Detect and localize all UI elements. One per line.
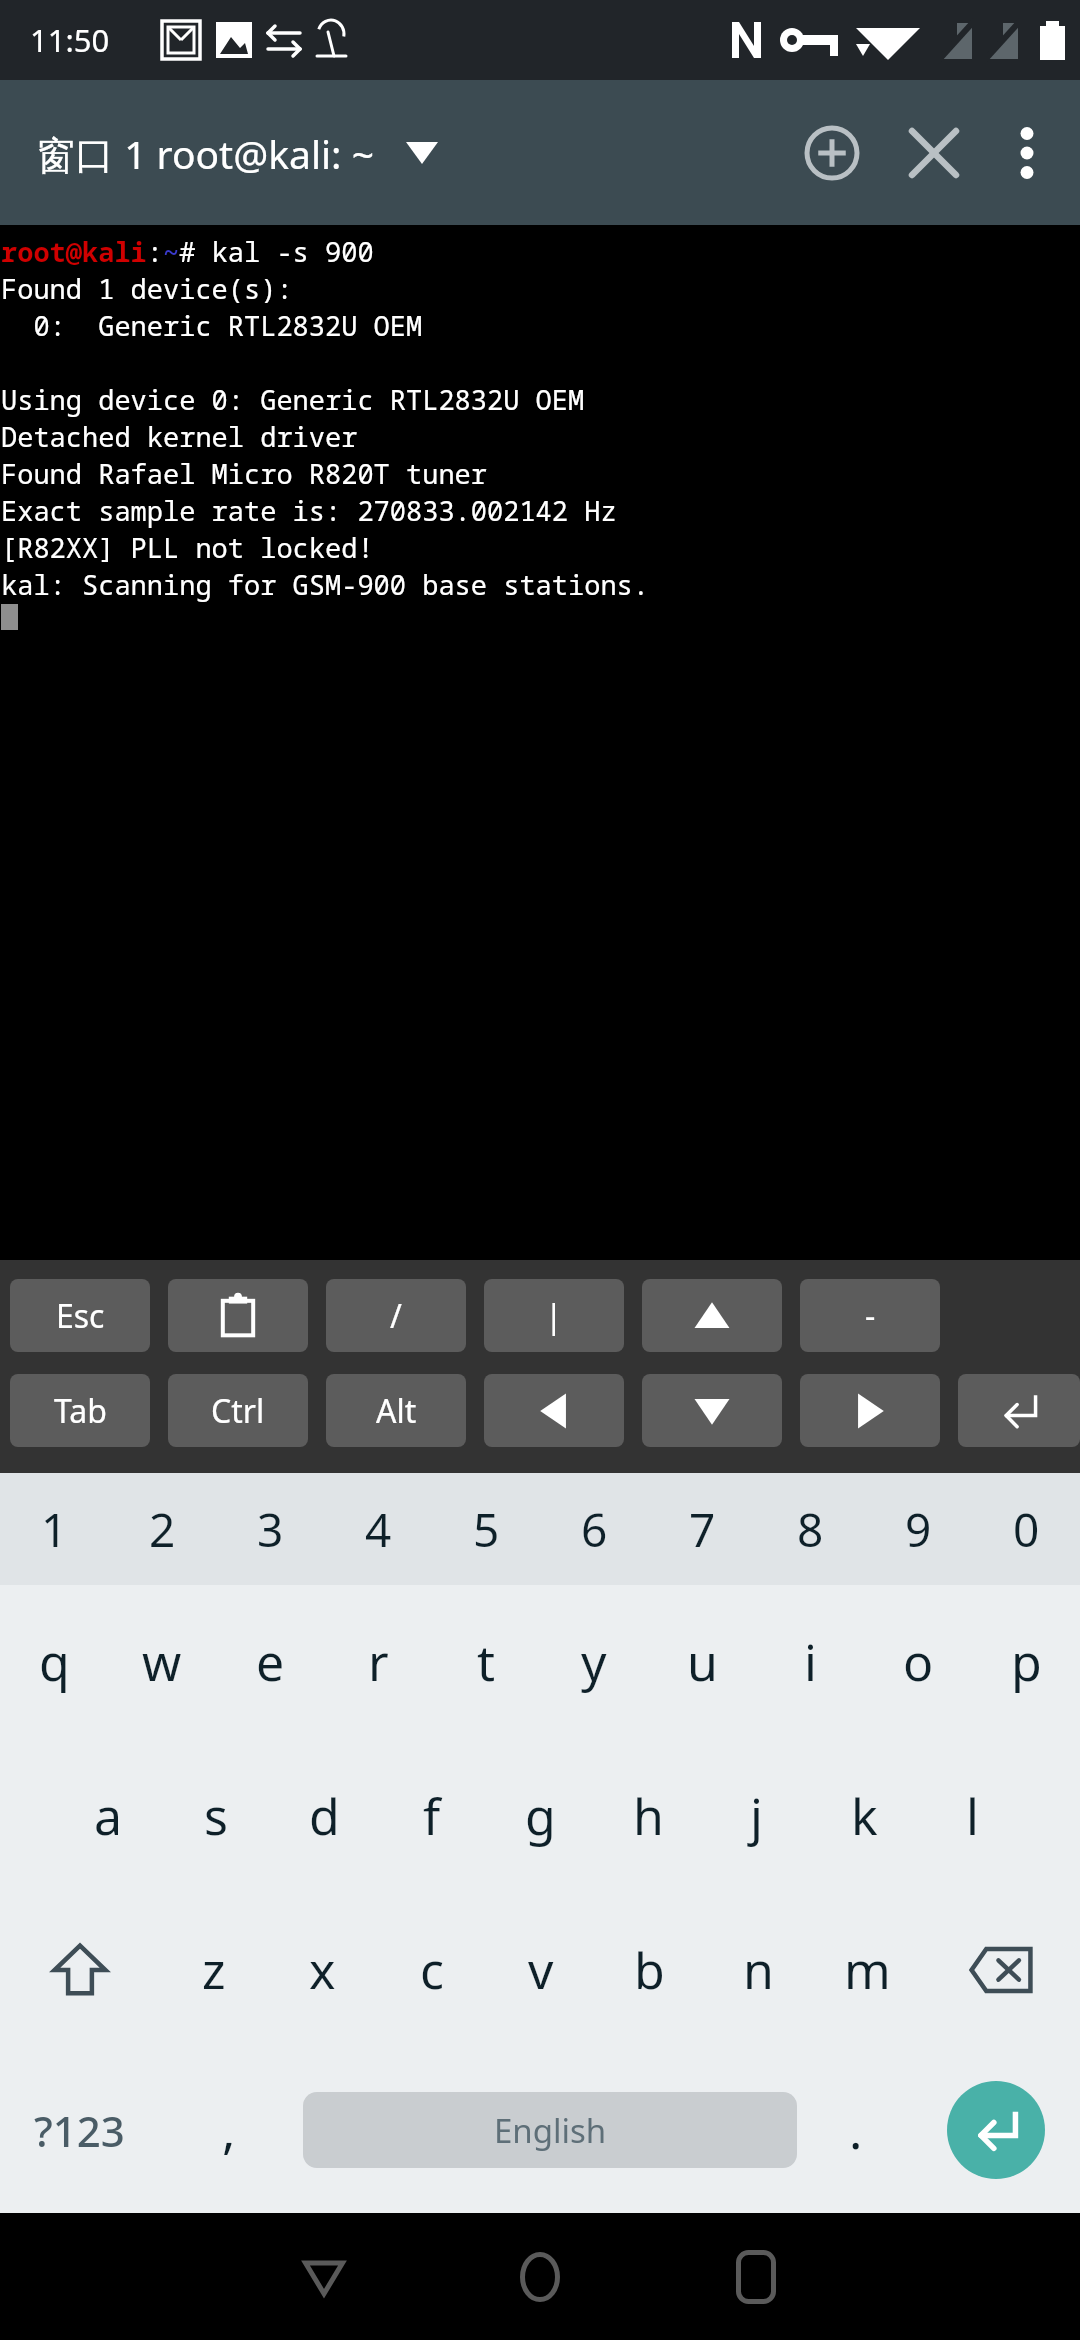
button[interactable]: 0 [972, 1473, 1080, 1585]
button[interactable]: - [800, 1279, 940, 1352]
button[interactable]: Paste [168, 1279, 308, 1352]
button[interactable]: Enter [912, 2047, 1080, 2213]
button[interactable]: 8 [756, 1473, 864, 1585]
button[interactable]: h [594, 1739, 702, 1893]
button[interactable]: 9 [864, 1473, 972, 1585]
staticText: 7 [689, 1498, 716, 1561]
button[interactable]: t [432, 1585, 540, 1739]
staticText: root@kali:~# kal -s 900 [1, 233, 374, 270]
staticText: s [204, 1782, 228, 1850]
staticText: 0: Generic RTL2832U OEM [1, 307, 423, 344]
staticText: English [494, 2108, 607, 2153]
button[interactable]: Close session [884, 98, 984, 208]
button[interactable]: 2 [108, 1473, 216, 1585]
button[interactable]: v [486, 1893, 595, 2047]
staticText: Detached kernel driver [1, 418, 358, 455]
button[interactable]: Enter key [958, 1374, 1080, 1447]
button[interactable]: Tab [10, 1374, 150, 1447]
button[interactable]: g [486, 1739, 594, 1893]
button[interactable]: New session [780, 98, 884, 208]
staticText: q [39, 1628, 70, 1696]
button[interactable]: o [864, 1585, 972, 1739]
button[interactable]: Recents [681, 2217, 831, 2337]
button[interactable]: / [326, 1279, 466, 1352]
button[interactable]: Back [249, 2217, 399, 2337]
button[interactable]: q [0, 1585, 108, 1739]
staticText: Found 1 device(s): [1, 270, 293, 307]
button[interactable]: m [813, 1893, 922, 2047]
staticText: r [368, 1628, 389, 1696]
button[interactable]: 窗口 1 root@kali: ~ [36, 127, 374, 180]
staticText: Ctrl [211, 1389, 265, 1433]
staticText: v [528, 1936, 554, 2004]
staticText: 2 [149, 1498, 176, 1561]
button[interactable]: 4 [324, 1473, 432, 1585]
staticText: 3 [257, 1498, 284, 1561]
button[interactable]: ?123 [0, 2047, 158, 2213]
staticText: o [903, 1628, 934, 1696]
button[interactable]: 1 [0, 1473, 108, 1585]
staticText: 6 [581, 1498, 608, 1561]
button[interactable]: n [704, 1893, 813, 2047]
button[interactable]: j [702, 1739, 810, 1893]
staticText: i [804, 1628, 817, 1696]
button[interactable]: a [54, 1739, 162, 1893]
button[interactable]: More options [984, 98, 1070, 208]
staticText: ?123 [34, 2102, 125, 2159]
button[interactable]: Ctrl [168, 1374, 308, 1447]
button[interactable]: Arrow down [642, 1374, 782, 1447]
staticText: Exact sample rate is: 270833.002142 Hz [1, 492, 617, 529]
button[interactable]: Arrow right [800, 1374, 940, 1447]
button[interactable]: p [972, 1585, 1080, 1739]
button[interactable]: 3 [216, 1473, 324, 1585]
button[interactable]: z [159, 1893, 268, 2047]
button[interactable]: 7 [648, 1473, 756, 1585]
staticText: m [844, 1936, 891, 2004]
button[interactable]: f [378, 1739, 486, 1893]
button[interactable]: s [162, 1739, 270, 1893]
staticText: t [477, 1628, 496, 1696]
button[interactable]: 6 [540, 1473, 648, 1585]
staticText: d [309, 1782, 340, 1850]
button[interactable]: root@kali:~# kal -s 900 [0, 225, 1080, 1260]
button[interactable]: r [324, 1585, 432, 1739]
staticText: j [750, 1782, 763, 1850]
staticText: c [420, 1936, 444, 2004]
button[interactable]: Shift [0, 1893, 159, 2047]
staticText: Alt [376, 1389, 417, 1433]
button[interactable]: Arrow left [484, 1374, 624, 1447]
button[interactable]: Backspace [922, 1893, 1080, 2047]
button[interactable]: 5 [432, 1473, 540, 1585]
staticText: y [581, 1628, 607, 1696]
button[interactable]: Select session [394, 125, 450, 181]
button[interactable]: i [756, 1585, 864, 1739]
button[interactable]: Home [465, 2217, 615, 2337]
button[interactable]: y [540, 1585, 648, 1739]
button[interactable]: k [810, 1739, 918, 1893]
button[interactable]: w [108, 1585, 216, 1739]
button[interactable]: l [918, 1739, 1026, 1893]
button[interactable]: d [270, 1739, 378, 1893]
button[interactable]: u [648, 1585, 756, 1739]
staticText: , [222, 2096, 236, 2164]
button[interactable]: , [158, 2047, 300, 2213]
button[interactable]: x [268, 1893, 377, 2047]
button[interactable]: . [800, 2047, 912, 2213]
staticText: f [423, 1782, 441, 1850]
button[interactable]: b [595, 1893, 704, 2047]
staticText: 8 [797, 1498, 824, 1561]
staticText: u [687, 1628, 718, 1696]
staticText: k [851, 1782, 878, 1850]
staticText: b [634, 1936, 665, 2004]
button[interactable]: English [303, 2092, 797, 2168]
staticText: [R82XX] PLL not locked! [1, 529, 374, 566]
button[interactable]: Alt [326, 1374, 466, 1447]
button[interactable]: c [377, 1893, 486, 2047]
button[interactable]: e [216, 1585, 324, 1739]
staticText: 11:50 [30, 19, 110, 61]
staticText: 5 [473, 1498, 500, 1561]
button[interactable]: Arrow up [642, 1279, 782, 1352]
button[interactable]: | [484, 1279, 624, 1352]
button[interactable]: Esc [10, 1279, 150, 1352]
staticText: 9 [905, 1498, 932, 1561]
